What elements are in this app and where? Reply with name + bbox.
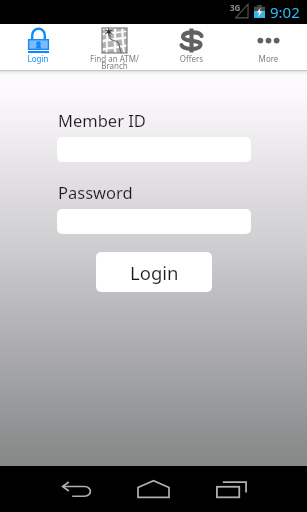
button[interactable]: Login (0, 24, 76, 70)
staticText: Password (58, 181, 133, 203)
button[interactable]: Offers (153, 24, 230, 70)
button[interactable]: Back (54, 466, 100, 512)
staticText: Login (130, 260, 179, 285)
staticText: Member ID (58, 109, 146, 131)
button[interactable]: Home (130, 466, 176, 512)
button[interactable]: Recent apps (208, 466, 254, 512)
button[interactable]: Login (96, 252, 212, 292)
staticText: Login (0, 53, 76, 64)
staticText: 3G (230, 2, 241, 13)
staticText: Offers (153, 53, 230, 64)
button[interactable]: Find an ATM/ Branch (76, 24, 153, 70)
staticText: More (230, 53, 307, 64)
staticText: Find an ATM/ Branch (76, 53, 153, 72)
staticText: 9:02 (270, 2, 300, 22)
button[interactable]: More (230, 24, 307, 70)
